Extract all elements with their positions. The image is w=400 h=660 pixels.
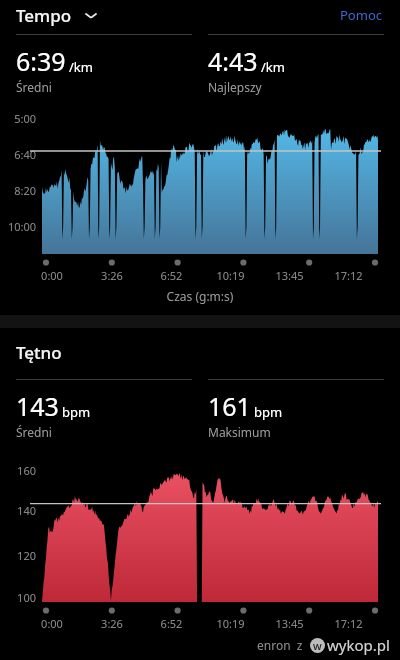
staticText: 10:19 xyxy=(201,268,260,283)
staticText: Maksimum xyxy=(208,424,271,440)
staticText: W xyxy=(313,640,322,652)
staticText: 4:43 xyxy=(208,44,258,78)
button[interactable]: 4:43 xyxy=(208,34,384,95)
staticText: 100 xyxy=(0,590,36,602)
staticText: bpm xyxy=(62,403,91,421)
staticText: 3:26 xyxy=(82,268,142,283)
staticText: 6:40 xyxy=(0,147,36,162)
button[interactable]: Tempo xyxy=(16,4,102,27)
staticText: enron z xyxy=(257,637,303,653)
staticText: Tempo xyxy=(16,4,72,27)
button[interactable]: Pomoc xyxy=(336,2,386,28)
staticText: 17:12 xyxy=(319,616,378,631)
staticText: 3:26 xyxy=(82,616,142,631)
staticText: Średni xyxy=(16,79,52,95)
staticText: 10:00 xyxy=(0,219,36,234)
staticText: 13:45 xyxy=(260,268,319,283)
staticText: 0:00 xyxy=(22,268,82,283)
button[interactable]: 161 xyxy=(208,379,384,440)
other: Change metric xyxy=(84,11,98,20)
staticText: 120 xyxy=(0,548,36,563)
staticText: 160 xyxy=(0,463,36,478)
staticText: 143 xyxy=(16,389,59,423)
button[interactable]: Tętno xyxy=(16,341,400,364)
staticText: Czas (g:m:s) xyxy=(0,288,400,304)
staticText: /km xyxy=(69,58,93,76)
staticText: 140 xyxy=(0,503,36,518)
button[interactable]: 6:39 xyxy=(16,34,192,95)
staticText: 13:45 xyxy=(260,616,319,631)
staticText: 161 xyxy=(208,389,251,423)
staticText: 6:52 xyxy=(142,268,201,283)
staticText: Średni xyxy=(16,424,52,440)
staticText: Pomoc xyxy=(340,6,382,24)
staticText: 10:19 xyxy=(201,616,260,631)
staticText: /km xyxy=(261,58,285,76)
staticText: Najlepszy xyxy=(208,79,262,95)
staticText: 6:52 xyxy=(142,616,201,631)
staticText: 0:00 xyxy=(22,616,82,631)
staticText: Tętno xyxy=(16,341,62,364)
staticText: 5:00 xyxy=(0,111,36,126)
button[interactable]: 143 xyxy=(16,379,192,440)
staticText: 6:39 xyxy=(16,44,66,78)
staticText: bpm xyxy=(254,403,283,421)
staticText: 17:12 xyxy=(319,268,378,283)
staticText: 8:20 xyxy=(0,183,36,198)
staticText: wykop.pl xyxy=(327,635,390,655)
